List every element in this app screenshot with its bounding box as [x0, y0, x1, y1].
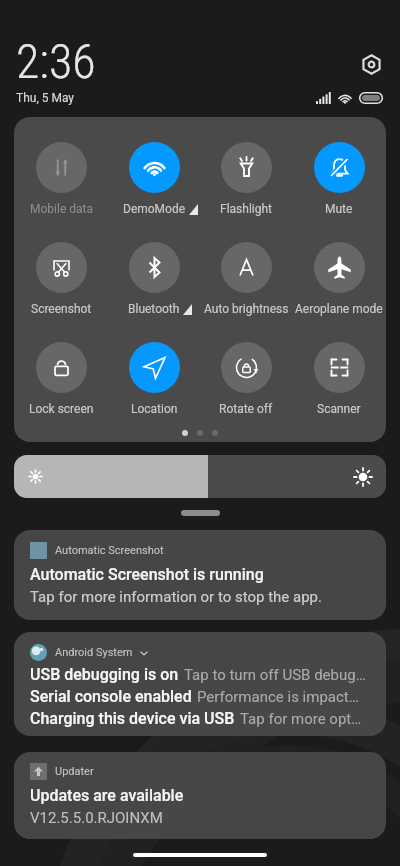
- staticText: Tap for more information or to stop the …: [30, 588, 322, 606]
- button[interactable]: Scanner: [293, 342, 385, 416]
- staticText: Tap to turn off USB debug…: [184, 666, 366, 684]
- button[interactable]: Lock screen: [15, 342, 107, 416]
- button[interactable]: Brightness: [14, 455, 386, 498]
- staticText: Rotate off: [219, 402, 273, 416]
- staticText: Location: [131, 402, 178, 416]
- staticText: Auto brightness: [204, 302, 289, 316]
- staticText: Tap for more opt…: [240, 710, 362, 728]
- button[interactable]: Auto brightness: [200, 242, 292, 316]
- button[interactable]: Rotate off: [200, 342, 292, 416]
- staticText: USB debugging is on: [30, 665, 179, 684]
- staticText: Performance is impact…: [197, 688, 359, 706]
- staticText: Updater: [55, 765, 94, 778]
- staticText: Mobile data: [30, 202, 93, 216]
- staticText: Flashlight: [220, 202, 272, 216]
- staticText: Aeroplane mode: [295, 302, 383, 316]
- staticText: Automatic Screenshot: [55, 544, 164, 557]
- button[interactable]: Bluetooth: [108, 242, 200, 316]
- button[interactable]: Screenshot: [15, 242, 107, 316]
- button[interactable]: DemoMode: [108, 142, 200, 216]
- staticText: Scanner: [317, 402, 361, 416]
- staticText: Updates are available: [30, 786, 184, 805]
- staticText: DemoMode: [123, 202, 186, 216]
- button[interactable]: Updater: [14, 752, 386, 839]
- button[interactable]: Android System: [14, 632, 386, 736]
- staticText: Screenshot: [31, 302, 92, 316]
- button[interactable]: Mute: [293, 142, 385, 216]
- staticText: Lock screen: [29, 402, 94, 416]
- button[interactable]: Flashlight: [200, 142, 292, 216]
- staticText: Serial console enabled: [30, 687, 192, 706]
- button[interactable]: Automatic Screenshot: [14, 530, 386, 620]
- button[interactable]: Mobile data: [15, 142, 107, 216]
- staticText: Android System: [55, 646, 133, 659]
- staticText: Bluetooth: [128, 302, 180, 316]
- button[interactable]: Settings: [361, 54, 382, 75]
- staticText: 2:36: [16, 33, 96, 89]
- button[interactable]: Aeroplane mode: [293, 242, 385, 316]
- button[interactable]: Expand: [181, 510, 220, 516]
- staticText: Charging this device via USB: [30, 709, 235, 728]
- staticText: Mute: [325, 202, 353, 216]
- staticText: Automatic Screenshot is running: [30, 565, 264, 584]
- staticText: V12.5.5.0.RJOINXM: [30, 809, 163, 827]
- button[interactable]: Location: [108, 342, 200, 416]
- staticText: Thu, 5 May: [16, 91, 75, 105]
